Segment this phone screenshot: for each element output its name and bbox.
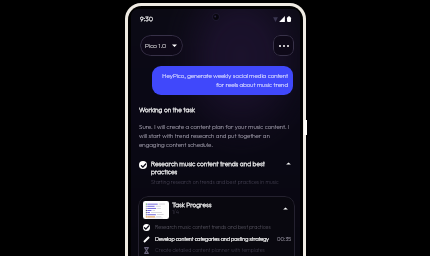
staticText: Pico 1.0 [145,42,167,50]
button[interactable]: More options [273,35,294,56]
button[interactable]: Develop content categories and posting s… [142,235,292,244]
staticText: HeyPico, generate weekly social media co… [159,72,288,89]
staticText: 1/4 [172,209,179,216]
staticText: Sure. I will create a content plan for y… [139,123,294,149]
button[interactable]: Research music content trends and best p… [142,223,292,232]
button[interactable]: Pico 1.0 [140,35,183,56]
staticText: Research music content trends and best p… [155,224,292,231]
staticText: Task Progress [172,200,212,208]
staticText: Research music content trends and best p… [151,159,287,176]
button[interactable]: Research music content trends and best p… [139,159,295,186]
staticText: Working on the task [139,105,195,113]
staticText: Starting research on trends and best pra… [151,179,279,186]
staticText: Create detailed content planner with tem… [155,247,292,254]
staticText: 00:35 [277,236,292,243]
button[interactable]: Create detailed content planner with tem… [142,246,292,255]
staticText: Develop content categories and posting s… [155,236,274,243]
staticText: 9:30 [140,15,153,23]
